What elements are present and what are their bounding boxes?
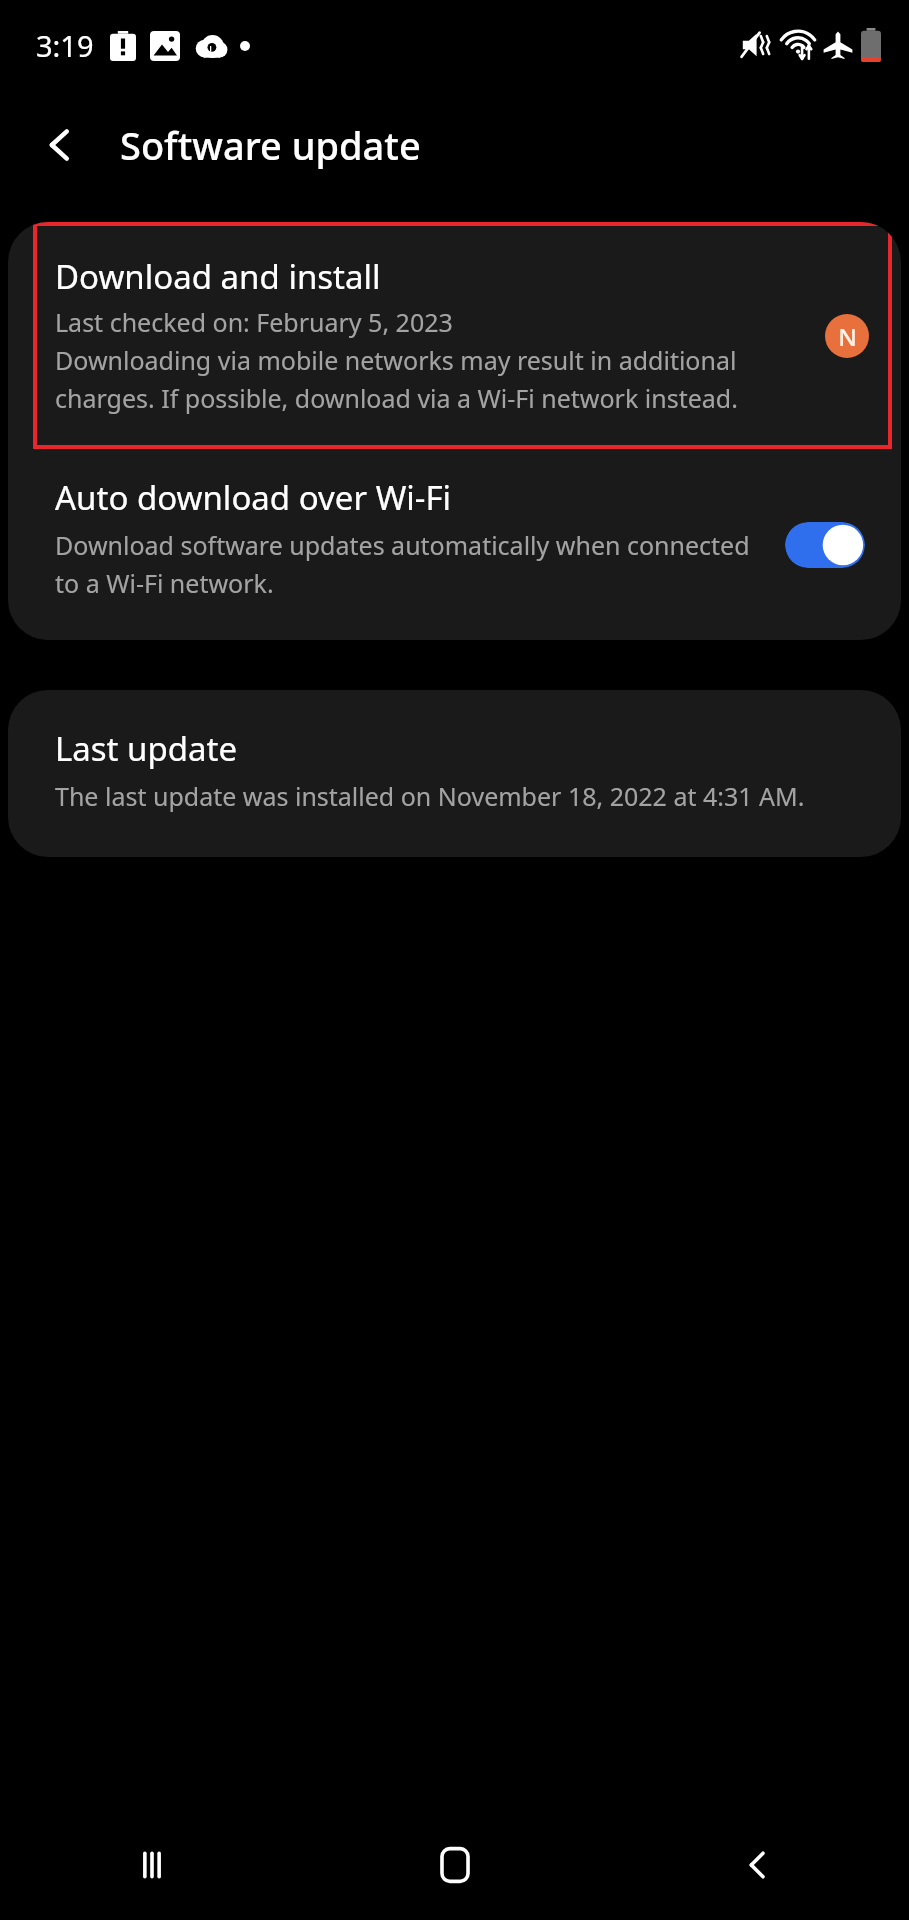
button[interactable]: Recent apps <box>0 1810 303 1920</box>
staticText: Last checked on: February 5, 2023 Downlo… <box>55 305 811 415</box>
button[interactable]: Last update <box>8 690 901 857</box>
staticText: Download and install <box>55 254 381 299</box>
staticText: Last update <box>55 726 238 771</box>
staticText: The last update was installed on Novembe… <box>55 779 805 813</box>
button[interactable]: Download and install <box>8 222 901 449</box>
staticText: Auto download over Wi-Fi <box>55 475 452 520</box>
button[interactable]: Auto download over Wi-Fi <box>8 449 901 640</box>
button[interactable]: Home <box>303 1810 606 1920</box>
staticText: Download software updates automatically … <box>55 528 771 600</box>
button[interactable]: Auto download over Wi-Fi toggle <box>785 522 865 568</box>
staticText: N <box>838 320 857 353</box>
button[interactable]: Back <box>22 107 98 183</box>
staticText: 3:19 <box>36 26 94 65</box>
staticText: Software update <box>120 119 421 171</box>
button[interactable]: Back <box>606 1810 909 1920</box>
